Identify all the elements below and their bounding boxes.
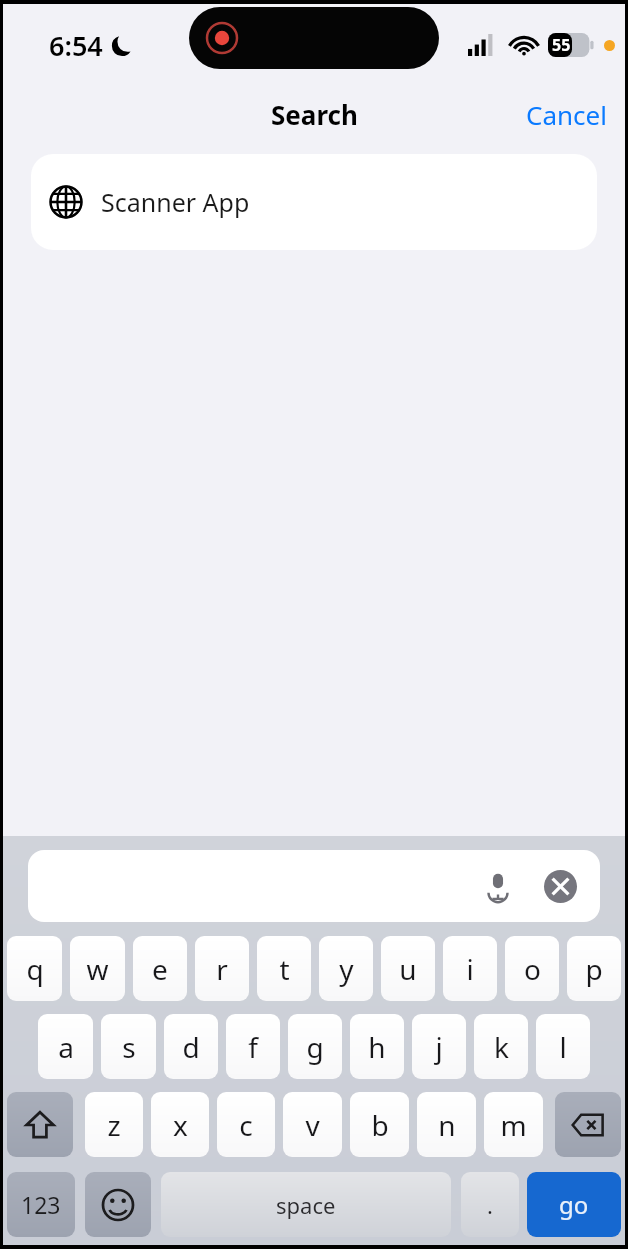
button[interactable]: d (164, 1014, 218, 1079)
button[interactable]: q (7, 936, 62, 1001)
staticText: f (248, 1028, 258, 1066)
button[interactable]: l (536, 1014, 590, 1079)
staticText: r (216, 950, 228, 988)
button[interactable]: go (527, 1172, 621, 1237)
button[interactable]: f (226, 1014, 280, 1079)
button[interactable]: Clear text (540, 866, 580, 906)
button[interactable]: Shift (7, 1092, 73, 1157)
staticText: 55 (552, 34, 571, 56)
button[interactable]: y (319, 936, 373, 1001)
staticText: s (122, 1028, 136, 1066)
staticText: k (494, 1028, 509, 1066)
button[interactable]: Backspace (555, 1092, 621, 1157)
staticText: space (276, 1190, 336, 1220)
staticText: d (182, 1028, 200, 1066)
button[interactable]: s (101, 1014, 156, 1079)
button[interactable]: Cancel (508, 91, 625, 138)
button[interactable]: Voice input (478, 866, 518, 906)
staticText: . (487, 1190, 493, 1220)
button[interactable]: b (350, 1092, 409, 1157)
staticText: y (339, 950, 354, 988)
staticText: Search (271, 97, 358, 132)
button[interactable]: m (484, 1092, 543, 1157)
button[interactable]: a (38, 1014, 93, 1079)
button[interactable]: z (85, 1092, 143, 1157)
staticText: a (58, 1028, 74, 1066)
button[interactable]: p (567, 936, 621, 1001)
button[interactable]: j (412, 1014, 466, 1079)
staticText: w (86, 950, 109, 988)
button[interactable]: r (195, 936, 249, 1001)
staticText: Scanner App (101, 185, 250, 219)
staticText: n (438, 1106, 456, 1144)
staticText: h (368, 1028, 386, 1066)
staticText: o (524, 950, 541, 988)
staticText: p (585, 950, 603, 988)
button[interactable]: Emoji (85, 1172, 151, 1237)
staticText: 123 (21, 1189, 61, 1220)
button[interactable]: . (461, 1172, 519, 1237)
button[interactable]: n (417, 1092, 476, 1157)
staticText: g (306, 1028, 324, 1066)
button[interactable]: 123 (7, 1172, 75, 1237)
button[interactable]: x (151, 1092, 209, 1157)
staticText: 6:54 (49, 27, 103, 64)
staticText: u (399, 950, 417, 988)
button[interactable]: i (443, 936, 497, 1001)
button[interactable]: o (505, 936, 559, 1001)
staticText: Cancel (526, 97, 607, 132)
staticText: q (26, 950, 44, 988)
button[interactable]: u (381, 936, 435, 1001)
button[interactable]: e (133, 936, 187, 1001)
staticText: c (239, 1106, 253, 1144)
staticText: z (107, 1106, 121, 1144)
staticText: e (152, 950, 168, 988)
button[interactable]: Scanner App (31, 154, 597, 250)
button[interactable]: h (350, 1014, 404, 1079)
button[interactable]: t (257, 936, 311, 1001)
staticText: j (435, 1028, 443, 1066)
staticText: go (559, 1188, 589, 1221)
button[interactable]: w (70, 936, 125, 1001)
staticText: t (279, 950, 290, 988)
staticText: m (500, 1106, 527, 1144)
staticText: x (173, 1106, 188, 1144)
button[interactable]: k (474, 1014, 528, 1079)
button[interactable]: g (288, 1014, 342, 1079)
button[interactable]: space (161, 1172, 451, 1237)
staticText: b (371, 1106, 389, 1144)
button[interactable]: v (283, 1092, 342, 1157)
button[interactable]: c (217, 1092, 275, 1157)
button[interactable]: Voice input (28, 850, 600, 922)
staticText: v (305, 1106, 320, 1144)
staticText: l (559, 1028, 567, 1066)
staticText: i (466, 950, 474, 988)
